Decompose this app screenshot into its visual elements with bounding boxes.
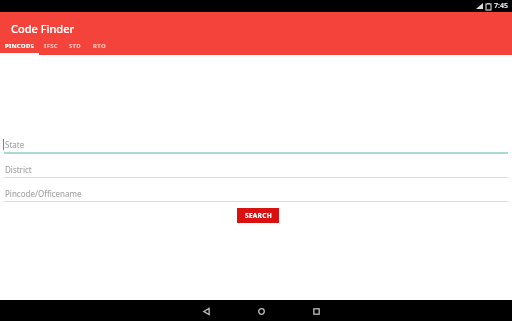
button[interactable]: Recents	[306, 301, 326, 321]
staticText: Pincode/Officename	[5, 188, 82, 199]
staticText: Code Finder	[11, 21, 75, 36]
staticText: IFSC	[44, 42, 58, 50]
staticText: PINCODE	[5, 42, 35, 50]
button[interactable]: IFSC	[39, 38, 63, 53]
staticText: 7:45	[494, 1, 508, 11]
button[interactable]: Home	[251, 301, 271, 321]
button[interactable]: STD	[63, 38, 87, 53]
staticText: SEARCH	[245, 211, 272, 220]
staticText: State	[5, 139, 25, 150]
staticText: District	[5, 164, 32, 175]
staticText: RTO	[93, 42, 106, 50]
staticText: STD	[69, 42, 82, 50]
button[interactable]: RTO	[87, 38, 111, 53]
button[interactable]: Back	[196, 301, 216, 321]
button[interactable]: PINCODE	[0, 38, 39, 53]
button[interactable]: SEARCH	[237, 208, 279, 223]
